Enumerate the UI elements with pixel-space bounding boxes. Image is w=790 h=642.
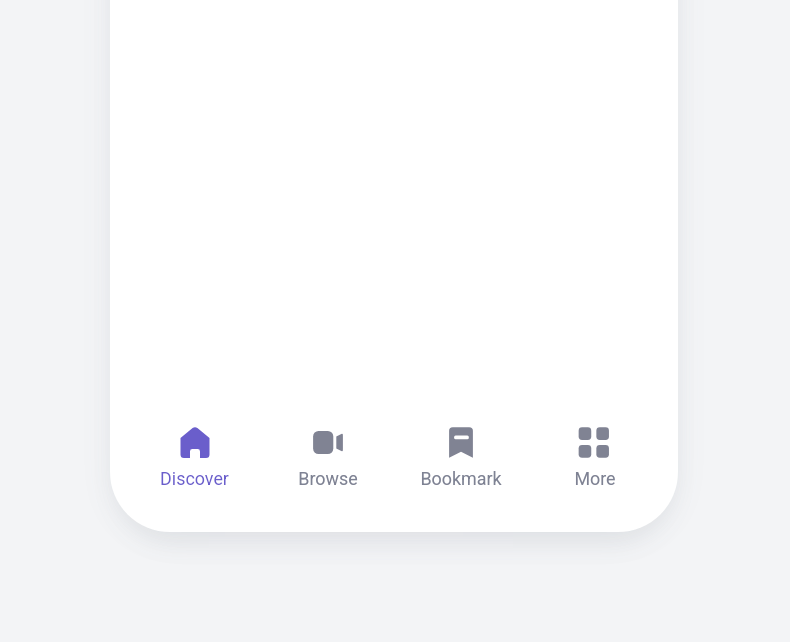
staticText: Discover [160,468,229,489]
other: Browse [311,427,345,458]
button[interactable]: Bookmark [394,427,528,489]
other: Bookmark [444,427,478,458]
button[interactable]: Browse [261,427,394,489]
staticText: Browse [298,468,358,489]
other: More [578,427,612,458]
button[interactable]: More [528,427,662,489]
staticText: Bookmark [420,468,502,489]
staticText: More [574,468,616,489]
other: Discover [178,427,212,458]
button[interactable]: Discover [128,427,261,489]
